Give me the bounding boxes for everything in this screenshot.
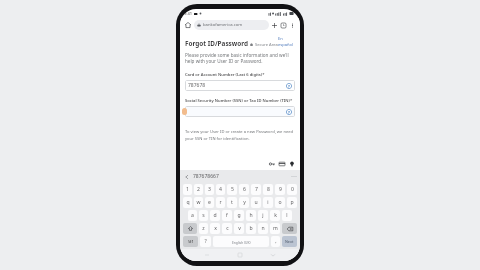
staticText: r	[219, 199, 222, 206]
button[interactable]: 7	[251, 184, 261, 195]
button[interactable]: 3	[205, 184, 214, 195]
staticText: ?	[288, 110, 290, 115]
button[interactable]: i	[263, 197, 273, 208]
staticText: l	[286, 212, 288, 219]
button[interactable]: Help	[286, 83, 292, 89]
staticText: Please provide some basic information an…	[185, 52, 295, 65]
button[interactable]: ,	[271, 236, 280, 247]
button[interactable]: l	[282, 210, 292, 221]
staticText: i	[267, 199, 269, 206]
button[interactable]: bankofamerica.com	[194, 20, 269, 30]
button[interactable]: v	[234, 223, 244, 234]
staticText: f	[226, 212, 228, 219]
staticText: y	[243, 199, 246, 206]
staticText: ?	[288, 84, 290, 89]
button[interactable]: c	[222, 223, 232, 234]
button[interactable]: Back	[267, 249, 279, 261]
button[interactable]: Next	[282, 236, 297, 247]
button[interactable]: English (UK)	[213, 236, 269, 247]
button[interactable]: Home	[183, 20, 193, 30]
button[interactable]: r	[216, 197, 225, 208]
button[interactable]: 0	[287, 184, 297, 195]
staticText: bankofamerica.com	[203, 22, 243, 28]
button[interactable]: En español	[278, 36, 295, 48]
staticText: To view your User ID or create a new Pas…	[185, 129, 295, 141]
button[interactable]: ?	[200, 236, 211, 247]
button[interactable]: 5	[227, 184, 237, 195]
button[interactable]: k	[270, 210, 280, 221]
button[interactable]: b	[246, 223, 256, 234]
staticText: Secure Area	[255, 42, 278, 48]
button[interactable]: Passwords	[267, 159, 277, 169]
button[interactable]: a	[188, 210, 197, 221]
staticText: 3	[208, 186, 211, 193]
button[interactable]: d	[210, 210, 220, 221]
button[interactable]: 787678	[185, 80, 295, 91]
button[interactable]: Payment methods	[277, 159, 287, 169]
button[interactable]: q	[183, 197, 192, 208]
button[interactable]: Switch tabs	[279, 21, 288, 30]
button[interactable]: 9	[275, 184, 285, 195]
button[interactable]: New tab	[270, 21, 279, 30]
button[interactable]: 8	[263, 184, 273, 195]
staticText: 5	[231, 186, 234, 193]
staticText: b	[249, 225, 253, 232]
button[interactable]: j	[258, 210, 268, 221]
button[interactable]: o	[275, 197, 285, 208]
button[interactable]: 2	[194, 184, 203, 195]
button[interactable]: e	[205, 197, 214, 208]
staticText: j	[262, 212, 264, 219]
staticText: k	[274, 212, 277, 219]
button[interactable]: x	[210, 223, 220, 234]
button[interactable]: m	[270, 223, 280, 234]
staticText: x	[214, 225, 217, 232]
staticText: u	[254, 199, 258, 206]
staticText: ?	[204, 238, 207, 245]
staticText: w	[196, 199, 201, 206]
button[interactable]: Addresses	[287, 159, 297, 169]
staticText: q	[186, 199, 190, 206]
staticText: c	[226, 225, 229, 232]
button[interactable]: 787678667	[193, 173, 219, 180]
button[interactable]: Help	[286, 109, 292, 115]
staticText: !#1	[188, 239, 194, 244]
button[interactable]: h	[246, 210, 256, 221]
button[interactable]: Help	[185, 106, 295, 117]
button[interactable]: t	[227, 197, 237, 208]
staticText: Social Security Number (SSN) or Tax ID N…	[185, 98, 293, 104]
staticText: 4	[219, 186, 222, 193]
button[interactable]: 6	[239, 184, 249, 195]
button[interactable]: Shift	[183, 223, 197, 234]
staticText: p	[290, 199, 294, 206]
staticText: h	[249, 212, 253, 219]
staticText: 0	[291, 186, 294, 193]
staticText: 7	[255, 186, 258, 193]
button[interactable]: Backspace	[282, 223, 297, 234]
button[interactable]: f	[222, 210, 232, 221]
button[interactable]: u	[251, 197, 261, 208]
button[interactable]: Previous suggestions	[183, 173, 191, 181]
button[interactable]: s	[199, 210, 208, 221]
button[interactable]: More options	[288, 21, 297, 30]
button[interactable]: n	[258, 223, 268, 234]
staticText: n	[261, 225, 265, 232]
staticText: e	[208, 199, 211, 206]
staticText: Card or Account Number (Last 6 digits)*	[185, 72, 265, 78]
button[interactable]: z	[199, 223, 208, 234]
staticText: m	[273, 225, 278, 232]
button[interactable]: g	[234, 210, 244, 221]
staticText: ,	[275, 238, 277, 245]
staticText: o	[278, 199, 282, 206]
button[interactable]: 4	[216, 184, 225, 195]
button[interactable]: y	[239, 197, 249, 208]
staticText: z	[202, 225, 205, 232]
staticText: v	[238, 225, 241, 232]
button[interactable]: w	[194, 197, 203, 208]
button[interactable]: !#1	[183, 236, 198, 247]
button[interactable]: p	[287, 197, 297, 208]
staticText: 787678	[188, 82, 206, 89]
button[interactable]: Home	[234, 249, 246, 261]
staticText: t	[231, 199, 233, 206]
button[interactable]: 1	[183, 184, 192, 195]
